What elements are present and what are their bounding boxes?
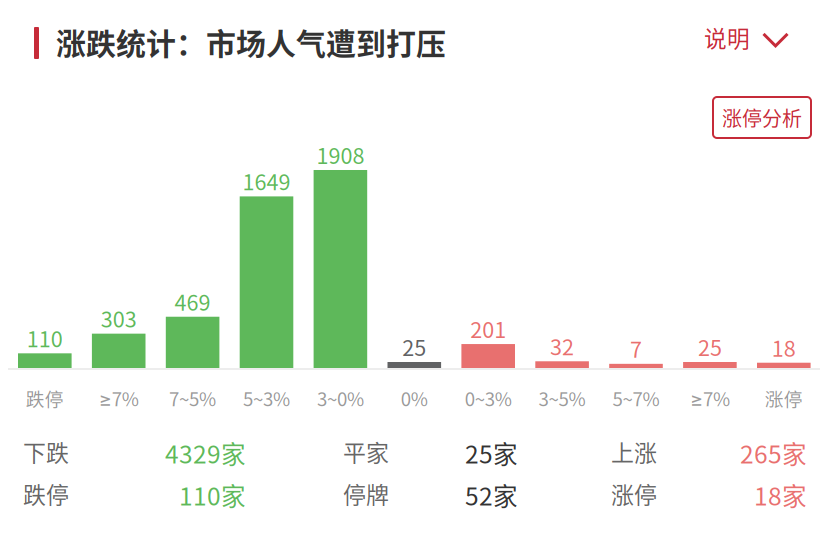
staticText: 4329家 [165, 435, 246, 470]
staticText: 5~3% [243, 384, 290, 411]
staticText: 469 [175, 286, 211, 317]
staticText: 303 [101, 302, 137, 334]
staticText: 5~7% [612, 384, 659, 411]
staticText: 涨停分析 [722, 103, 802, 132]
staticText: 25 [402, 331, 426, 362]
staticText: 平家 [343, 435, 389, 468]
staticText: 201 [470, 313, 506, 344]
staticText: 跌停 [26, 384, 64, 411]
staticText: 跌停 [23, 477, 69, 510]
staticText: 涨跌统计：市场人气遭到打压 [56, 20, 446, 63]
staticText: 18 [772, 332, 796, 363]
staticText: 0~3% [465, 384, 512, 411]
staticText: 3~0% [317, 384, 364, 411]
staticText: 下跌 [23, 435, 69, 468]
staticText: 说明 [704, 21, 750, 54]
staticText: 停牌 [343, 477, 389, 510]
staticText: 7~5% [169, 384, 216, 411]
staticText: 上涨 [611, 435, 657, 468]
staticText: 1908 [316, 139, 364, 170]
staticText: 0% [401, 384, 428, 411]
staticText: 1649 [242, 165, 290, 197]
staticText: 25家 [465, 435, 518, 470]
staticText: 涨停 [611, 477, 657, 510]
staticText: ≥7% [99, 385, 139, 411]
staticText: 18家 [754, 477, 807, 512]
staticText: 25 [698, 331, 722, 362]
button[interactable]: 涨停分析 [713, 97, 811, 138]
button[interactable]: 说明 [704, 21, 789, 54]
staticText: 265家 [740, 435, 807, 470]
staticText: ≥7% [690, 385, 730, 411]
staticText: 110 [27, 322, 63, 353]
staticText: 110家 [179, 477, 246, 512]
staticText: 52家 [465, 477, 518, 512]
staticText: 涨停 [765, 384, 803, 411]
staticText: 3~5% [539, 384, 586, 411]
staticText: 7 [630, 333, 642, 364]
staticText: 32 [550, 330, 574, 361]
